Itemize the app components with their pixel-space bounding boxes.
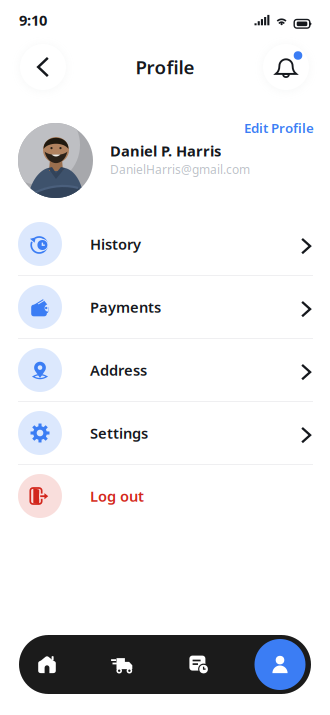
button[interactable]: Profile (252, 635, 308, 694)
staticText: Edit Profile (244, 119, 314, 137)
staticText: Payments (90, 297, 161, 317)
staticText: Daniel P. Harris (110, 141, 221, 160)
button[interactable]: History (0, 213, 330, 275)
button[interactable]: Log out (0, 465, 330, 527)
button[interactable]: Deliveries (98, 635, 148, 694)
staticText: Address (90, 360, 147, 380)
staticText: DanielHarris@gmail.com (110, 161, 250, 177)
staticText: Log out (90, 486, 144, 506)
button[interactable]: Address (0, 339, 330, 401)
button[interactable]: Back (20, 44, 66, 90)
button[interactable]: Edit Profile (240, 115, 318, 141)
button[interactable]: Notifications (263, 44, 309, 90)
button[interactable]: Orders (174, 635, 224, 694)
staticText: Profile (135, 55, 194, 79)
staticText: 9:10 (19, 10, 47, 30)
button[interactable]: Payments (0, 276, 330, 338)
button[interactable]: Settings (0, 402, 330, 464)
button[interactable]: Home (22, 635, 72, 694)
staticText: Settings (90, 423, 148, 443)
staticText: History (90, 234, 141, 254)
